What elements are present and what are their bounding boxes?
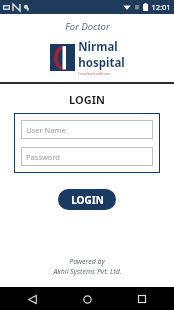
button[interactable]: LOGIN	[58, 189, 116, 210]
staticText: For Doctor	[65, 20, 110, 33]
button[interactable]: Password	[21, 147, 153, 166]
staticText: hospital	[78, 55, 125, 71]
staticText: 12:01	[151, 2, 171, 12]
staticText: Akhil Systems Pvt. Ltd.	[53, 267, 122, 277]
button[interactable]: Back	[22, 289, 42, 309]
staticText: Powered by	[69, 257, 105, 267]
staticText: Complete health care	[78, 72, 110, 76]
staticText: LOGIN	[69, 92, 105, 107]
button[interactable]: Recent apps	[132, 289, 152, 309]
staticText: LOGIN	[71, 193, 104, 207]
staticText: Nirmal	[78, 39, 118, 55]
staticText: User Name	[26, 125, 66, 135]
button[interactable]: Home	[77, 289, 97, 309]
button[interactable]: User Name	[21, 120, 153, 139]
staticText: Password	[26, 152, 60, 162]
